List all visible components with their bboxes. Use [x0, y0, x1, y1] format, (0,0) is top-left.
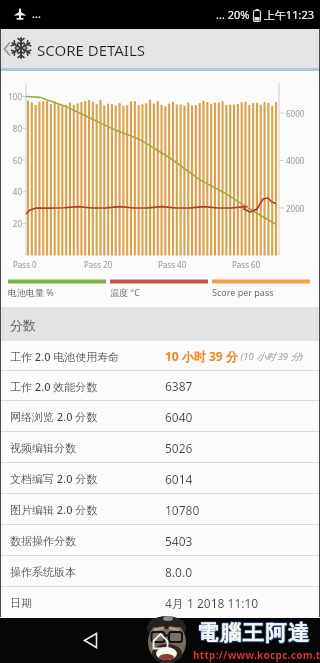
staticText: (10 小时 39 分) — [238, 350, 303, 363]
staticText: 视频编辑分数 — [10, 441, 160, 455]
staticText: 日期 — [10, 596, 160, 610]
staticText: 工作 2.0 效能分数 — [10, 379, 160, 394]
staticText: 工作 2.0 电池使用寿命 — [10, 349, 160, 364]
staticText: ... 20% — [216, 7, 253, 22]
staticText: ... — [32, 6, 41, 21]
staticText: 電腦王阿達 — [196, 621, 310, 647]
staticText: 电池电量 % — [8, 286, 54, 298]
staticText: 8.0.0 — [165, 564, 193, 580]
staticText: Pass 20 — [84, 259, 113, 270]
staticText: Pass 60 — [232, 259, 261, 270]
staticText: 数据操作分数 — [10, 534, 160, 548]
staticText: 10780 — [165, 502, 200, 518]
staticText: 電腦王阿達 — [196, 619, 310, 645]
staticText: http://www.kocpc.com.tw — [193, 648, 320, 662]
staticText: 5026 — [165, 440, 193, 456]
staticText: 60 — [2, 155, 22, 166]
staticText: 40 — [2, 186, 22, 197]
staticText: SCORE DETAILS — [37, 40, 146, 60]
button[interactable]: 视频编辑分数 — [0, 432, 320, 463]
staticText: 電腦王阿達 — [195, 620, 309, 646]
staticText: 操作系统版本 — [10, 565, 160, 579]
button[interactable]: 工作 2.0 效能分数 — [0, 371, 320, 401]
button[interactable]: 数据操作分数 — [0, 525, 320, 556]
button[interactable] — [143, 618, 179, 663]
staticText: 6014 — [165, 471, 193, 487]
staticText: 网络浏览 2.0 分数 — [10, 409, 160, 424]
button[interactable]: 工作 2.0 电池使用寿命 — [0, 341, 320, 371]
button[interactable] — [72, 618, 108, 663]
staticText: Score per pass — [212, 286, 274, 298]
staticText: 6040 — [165, 409, 193, 425]
button[interactable]: 文档编写 2.0 分数 — [0, 463, 320, 494]
staticText: 10 小时 39 分 — [165, 348, 238, 364]
staticText: 上午11:23 — [261, 7, 314, 22]
staticText: 電腦王阿達 — [197, 621, 311, 647]
staticText: 100 — [2, 91, 22, 102]
staticText: 電腦王阿達 — [195, 621, 309, 647]
staticText: 80 — [2, 123, 22, 134]
button[interactable]: 操作系统版本 — [0, 556, 320, 587]
staticText: 文档编写 2.0 分数 — [10, 471, 160, 486]
staticText: 5403 — [165, 533, 193, 549]
staticText: 4000 — [286, 155, 305, 166]
staticText: 6387 — [165, 378, 193, 394]
staticText: 图片编辑 2.0 分数 — [10, 502, 160, 517]
staticText: 20 — [2, 218, 22, 229]
staticText: 温度 °C — [110, 286, 140, 298]
staticText: 電腦王阿達 — [197, 620, 311, 646]
button[interactable]: 图片编辑 2.0 分数 — [0, 494, 320, 525]
staticText: 分数 — [10, 317, 36, 333]
staticText: 2000 — [286, 203, 305, 214]
staticText: 6000 — [286, 108, 305, 119]
button[interactable] — [0, 29, 14, 68]
staticText: Pass 0 — [13, 259, 37, 270]
staticText: Pass 40 — [158, 259, 187, 270]
button[interactable]: 日期 — [0, 587, 320, 618]
staticText: 4月 1 2018 11:10 — [165, 595, 259, 611]
button[interactable]: 网络浏览 2.0 分数 — [0, 401, 320, 432]
staticText: 電腦王阿達 — [196, 620, 310, 646]
